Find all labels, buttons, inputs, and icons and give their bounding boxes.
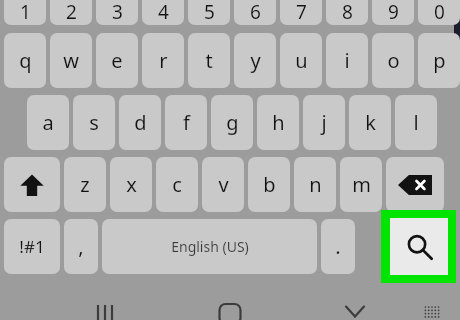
staticText: t — [205, 47, 213, 74]
button[interactable]: Symbols — [4, 219, 60, 274]
button[interactable]: q — [4, 33, 46, 88]
staticText: i — [344, 47, 350, 74]
button[interactable]: Recents — [80, 300, 130, 320]
staticText: p — [433, 47, 446, 74]
button[interactable]: v — [202, 157, 244, 212]
staticText: w — [63, 47, 79, 74]
button[interactable]: Home — [205, 300, 255, 320]
button[interactable]: 6 — [234, 0, 276, 25]
staticText: d — [134, 109, 147, 136]
button[interactable]: x — [110, 157, 152, 212]
staticText: 3 — [112, 0, 123, 25]
staticText: n — [309, 171, 322, 198]
button[interactable]: p — [418, 33, 460, 88]
button[interactable]: Shift — [4, 157, 60, 212]
button[interactable]: z — [64, 157, 106, 212]
button[interactable]: Backspace — [386, 157, 444, 212]
button[interactable]: 0 — [418, 0, 460, 25]
staticText: 8 — [342, 0, 353, 25]
button[interactable]: d — [119, 95, 161, 150]
button[interactable]: l — [395, 95, 437, 150]
staticText: b — [263, 171, 276, 198]
button[interactable]: 5 — [188, 0, 230, 25]
button[interactable]: b — [248, 157, 290, 212]
button[interactable]: 2 — [50, 0, 92, 25]
staticText: g — [226, 109, 239, 136]
button[interactable]: Search — [381, 210, 456, 283]
staticText: q — [19, 47, 32, 74]
button[interactable]: y — [234, 33, 276, 88]
staticText: 5 — [204, 0, 215, 25]
button[interactable]: k — [349, 95, 391, 150]
staticText: m — [352, 171, 371, 198]
button[interactable]: 1 — [4, 0, 46, 25]
staticText: v — [218, 171, 229, 198]
staticText: k — [365, 109, 376, 136]
button[interactable]: Back — [332, 300, 378, 320]
staticText: English (US) — [171, 237, 249, 256]
button[interactable]: m — [340, 157, 382, 212]
button[interactable]: 9 — [372, 0, 414, 25]
staticText: x — [126, 171, 137, 198]
staticText: r — [159, 47, 168, 74]
button[interactable]: t — [188, 33, 230, 88]
button[interactable]: i — [326, 33, 368, 88]
staticText: h — [272, 109, 285, 136]
button[interactable]: Keyboard options — [412, 300, 452, 320]
button[interactable]: s — [73, 95, 115, 150]
staticText: z — [80, 171, 90, 198]
staticText: 2 — [66, 0, 77, 25]
button[interactable]: f — [165, 95, 207, 150]
staticText: , — [78, 233, 84, 260]
button[interactable]: r — [142, 33, 184, 88]
staticText: o — [387, 47, 400, 74]
staticText: 7 — [296, 0, 307, 25]
button[interactable]: j — [303, 95, 345, 150]
staticText: j — [321, 109, 327, 136]
staticText: . — [335, 233, 341, 260]
button[interactable]: g — [211, 95, 253, 150]
button[interactable]: u — [280, 33, 322, 88]
staticText: a — [42, 109, 54, 136]
button[interactable]: e — [96, 33, 138, 88]
button[interactable]: h — [257, 95, 299, 150]
staticText: 6 — [250, 0, 261, 25]
staticText: 0 — [434, 0, 445, 25]
staticText: 4 — [158, 0, 169, 25]
button[interactable]: Space — [102, 219, 317, 274]
button[interactable]: 3 — [96, 0, 138, 25]
staticText: 1 — [20, 0, 31, 25]
staticText: u — [295, 47, 308, 74]
button[interactable]: . — [321, 219, 355, 274]
staticText: l — [413, 109, 419, 136]
button[interactable]: 7 — [280, 0, 322, 25]
button[interactable]: c — [156, 157, 198, 212]
staticText: c — [172, 171, 182, 198]
staticText: 9 — [388, 0, 399, 25]
staticText: e — [111, 47, 123, 74]
staticText: !#1 — [19, 235, 45, 258]
staticText: s — [89, 109, 99, 136]
staticText: f — [183, 109, 190, 136]
button[interactable]: 8 — [326, 0, 368, 25]
button[interactable]: , — [64, 219, 98, 274]
staticText: y — [250, 47, 261, 74]
button[interactable]: w — [50, 33, 92, 88]
button[interactable]: a — [27, 95, 69, 150]
button[interactable]: n — [294, 157, 336, 212]
button[interactable]: 4 — [142, 0, 184, 25]
button[interactable]: o — [372, 33, 414, 88]
